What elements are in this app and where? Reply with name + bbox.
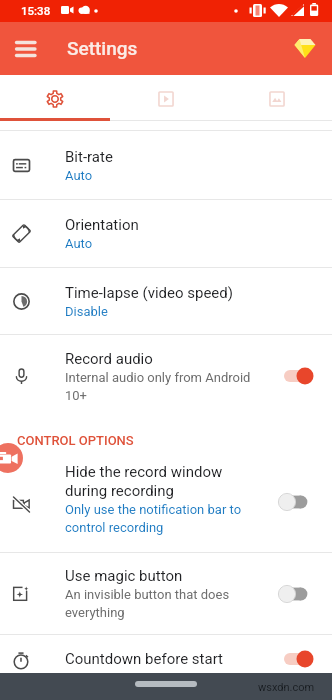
button[interactable]: Use magic button bbox=[0, 553, 332, 634]
button[interactable]: Toggle bbox=[276, 356, 316, 396]
staticText: Auto bbox=[65, 168, 93, 183]
staticText: wsxdn.com bbox=[258, 681, 315, 694]
button[interactable]: Settings tab bbox=[0, 75, 110, 120]
staticText: Disable bbox=[65, 304, 108, 319]
button[interactable]: Time-lapse (video speed) bbox=[0, 268, 332, 334]
button[interactable]: Premium bbox=[292, 35, 318, 61]
staticText: Use magic button bbox=[65, 567, 183, 585]
staticText: Internal audio only from Android 10+ bbox=[65, 370, 251, 403]
button[interactable]: Toggle bbox=[276, 574, 316, 614]
staticText: Auto bbox=[65, 236, 93, 251]
staticText: Time-lapse (video speed) bbox=[65, 284, 233, 302]
staticText: Record audio bbox=[65, 350, 153, 368]
button[interactable]: Videos tab bbox=[110, 75, 221, 120]
button[interactable]: Menu bbox=[11, 35, 37, 61]
button[interactable]: Countdown before start bbox=[0, 635, 332, 683]
staticText: Hide the record window during recording bbox=[65, 463, 223, 500]
staticText: Bit-rate bbox=[65, 148, 113, 166]
button[interactable]: Bit-rate bbox=[0, 131, 332, 199]
button[interactable]: Images tab bbox=[221, 75, 332, 120]
button[interactable]: Start recording bbox=[0, 443, 23, 473]
staticText: An invisible button that does everything bbox=[65, 587, 230, 620]
button[interactable]: Hide the record window during recording bbox=[0, 457, 332, 552]
button[interactable]: Orientation bbox=[0, 200, 332, 267]
staticText: Settings bbox=[67, 37, 138, 59]
staticText: 15:38 bbox=[21, 4, 51, 17]
button[interactable]: Record audio bbox=[0, 335, 332, 417]
staticText: Orientation bbox=[65, 216, 139, 234]
button[interactable]: Toggle bbox=[276, 482, 316, 522]
staticText: Only use the notification bar to control… bbox=[65, 502, 242, 535]
staticText: Countdown before start bbox=[65, 650, 223, 668]
staticText: CONTROL OPTIONS bbox=[17, 433, 134, 448]
button[interactable]: Toggle bbox=[276, 639, 316, 679]
